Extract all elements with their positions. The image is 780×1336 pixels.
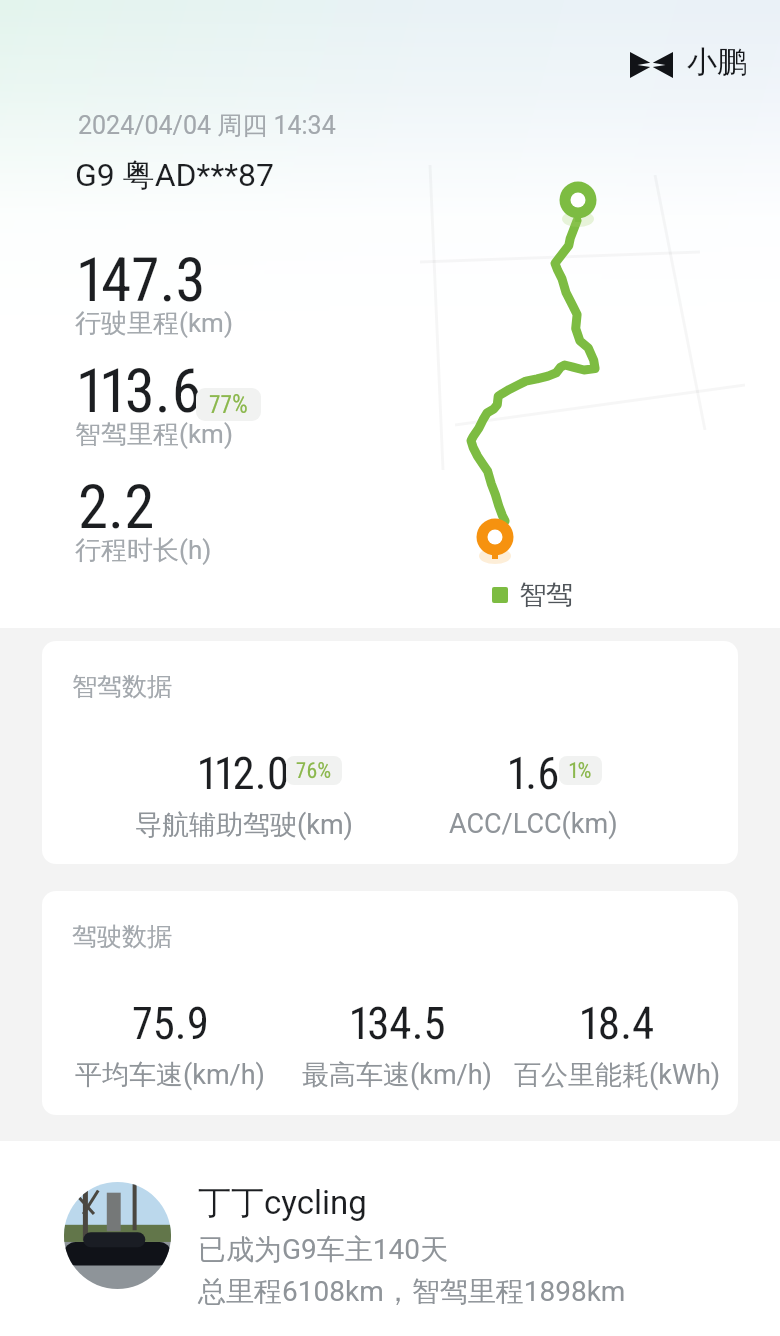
staticText: 最高车速(km/h) <box>302 1058 493 1092</box>
staticText: 134.5 <box>350 997 446 1050</box>
staticText: 75.9 <box>132 997 210 1050</box>
staticText: ACC/LCC(km) <box>449 808 618 840</box>
staticText: 智驾 <box>519 578 573 612</box>
staticText: 智驾数据 <box>72 671 172 702</box>
staticText: 76% <box>296 758 332 784</box>
staticText: 总里程6108km，智驾里程1898km <box>198 1274 626 1309</box>
staticText: 1% <box>569 758 592 784</box>
button[interactable]: XPeng <box>630 46 747 84</box>
staticText: G9 粤AD***87 <box>75 155 274 195</box>
staticText: 已成为G9车主140天 <box>198 1232 449 1267</box>
staticText: 18.4 <box>580 997 655 1050</box>
staticText: 1.6 <box>508 747 560 800</box>
staticText: 113.6 <box>78 355 202 426</box>
staticText: 百公里能耗(kWh) <box>514 1058 721 1092</box>
staticText: 2024/04/04 周四 14:34 <box>78 110 336 141</box>
button[interactable]: 智驾数据 <box>42 641 738 864</box>
staticText: 2.2 <box>78 471 155 542</box>
button[interactable]: 丁丁cycling <box>64 1182 626 1309</box>
staticText: 驾驶数据 <box>72 921 172 952</box>
button[interactable]: 智驾 <box>492 578 573 612</box>
staticText: 行程时长(h) <box>75 534 212 567</box>
staticText: 平均车速(km/h) <box>75 1058 266 1092</box>
staticText: 智驾里程(km) <box>75 418 233 451</box>
staticText: 77% <box>209 390 248 419</box>
staticText: 147.3 <box>78 244 206 315</box>
staticText: 小鹏 <box>687 43 747 81</box>
button[interactable]: 驾驶数据 <box>42 891 738 1115</box>
staticText: 行驶里程(km) <box>75 307 233 340</box>
staticText: 112.0 <box>198 747 290 800</box>
staticText: 丁丁cycling <box>198 1182 367 1224</box>
staticText: 导航辅助驾驶(km) <box>135 808 354 842</box>
